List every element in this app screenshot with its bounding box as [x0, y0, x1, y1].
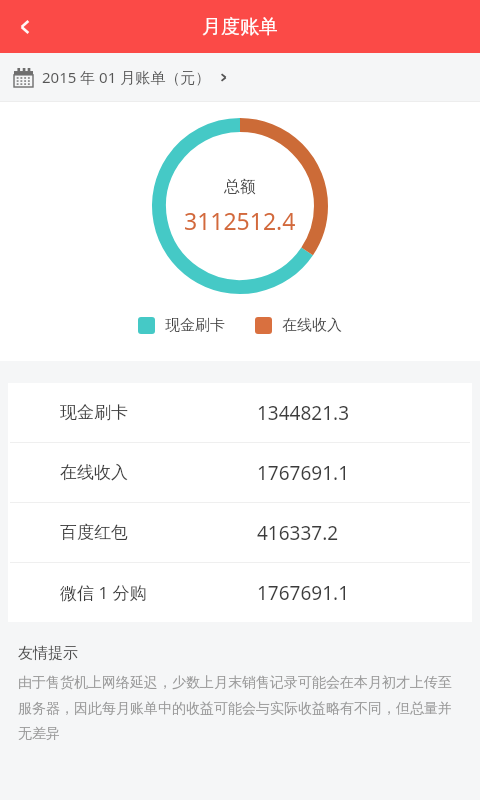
staticText: 微信 1 分购 [60, 581, 147, 604]
staticText: 2015 年 01 月账单（元） [42, 67, 211, 87]
staticText: 1767691.1 [257, 580, 350, 606]
staticText: 在线收入 [282, 316, 342, 335]
staticText: 月度账单 [202, 15, 278, 39]
staticText: 现金刷卡 [60, 402, 128, 423]
staticText: 416337.2 [257, 520, 339, 546]
staticText: 由于售货机上网络延迟，少数上月末销售记录可能会在本月初才上传至服务器，因此每月账… [18, 674, 462, 742]
staticText: 总额 [224, 177, 256, 197]
button[interactable]: 百度红包 [8, 503, 472, 562]
button[interactable]: Back [0, 1, 52, 53]
staticText: 在线收入 [60, 462, 128, 483]
staticText: 友情提示 [18, 644, 78, 663]
staticText: 1344821.3 [257, 400, 350, 426]
button[interactable]: 微信 1 分购 [8, 563, 472, 622]
staticText: 1767691.1 [257, 460, 350, 486]
button[interactable]: 2015 年 01 月账单（元） [0, 53, 480, 101]
staticText: 3112512.4 [184, 205, 296, 236]
button[interactable]: 在线收入 [8, 443, 472, 502]
button[interactable]: 现金刷卡 [8, 383, 472, 442]
staticText: 百度红包 [60, 522, 128, 543]
staticText: 现金刷卡 [165, 316, 225, 335]
